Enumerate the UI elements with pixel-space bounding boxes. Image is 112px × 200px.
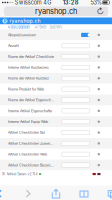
staticText: ryanshop.ch <box>9 18 40 24</box>
staticText: 15 <box>2 172 5 176</box>
staticText: 4G <box>43 0 51 6</box>
button[interactable]: Artikel <box>29 25 46 29</box>
staticText: Artikel Daten v2.11.4 <box>6 172 37 176</box>
staticText: R <box>3 18 6 24</box>
staticText: Interne Artikel Kurzbezeic <box>8 65 49 70</box>
staticText: Swisscom <box>15 0 42 6</box>
staticText: 53% <box>90 0 101 6</box>
staticText: Suchen <box>49 25 61 29</box>
button[interactable]: Suchen <box>46 25 61 29</box>
staticText: Artikel Checklisten Bul <box>8 130 45 135</box>
staticText: Artikel Checklisten Web <box>8 152 47 156</box>
staticText: Name Produkt fur Web <box>8 87 44 91</box>
staticText: Name der Artikel Kurzbez <box>8 76 49 80</box>
button[interactable]: Abo/Upgrade <box>7 25 29 29</box>
staticText: Artikel <box>34 25 46 29</box>
button[interactable]: Tabs <box>102 185 112 200</box>
staticText: ryanshop.ch <box>35 7 77 16</box>
staticText: Artikel Checklisten Zuweisen <box>8 141 54 146</box>
staticText: ↻ <box>96 6 104 16</box>
staticText: Artikel Checklisten Bezeichn <box>8 163 54 167</box>
staticText: Anzahl <box>8 44 19 48</box>
staticText: Interne Artikel Equip Web <box>8 119 48 124</box>
button[interactable]: Share <box>46 185 66 200</box>
button[interactable]: Reload <box>96 7 105 16</box>
button[interactable]: Back <box>0 185 10 200</box>
staticText: Name der Artikel Eigenschfte <box>8 98 54 102</box>
staticText: Name der Artikel Checkliste <box>8 54 54 59</box>
button[interactable]: Forward <box>18 185 38 200</box>
button[interactable]: Bookmarks <box>74 185 94 200</box>
staticText: Abo/Upgrade <box>7 25 29 29</box>
staticText: 13:28 <box>63 0 79 6</box>
staticText: Interne Artikel Eigenschafte <box>8 109 52 113</box>
staticText: Abspielzuweisen <box>8 33 36 37</box>
